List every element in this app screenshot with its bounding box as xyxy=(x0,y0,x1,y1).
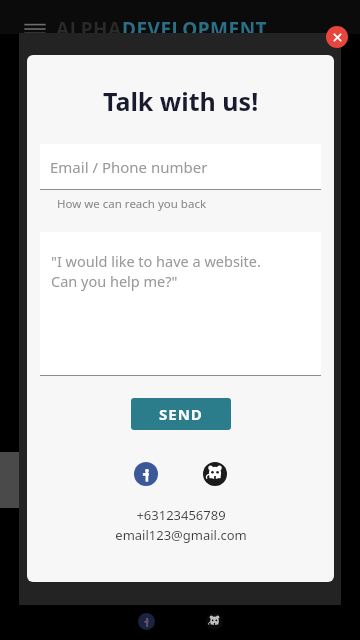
button[interactable]: GitHub xyxy=(198,457,232,491)
button[interactable]: Close xyxy=(326,26,348,48)
button[interactable] xyxy=(19,33,341,605)
button[interactable]: SEND xyxy=(131,398,231,430)
staticText: Email / Phone number xyxy=(50,157,208,177)
button[interactable]: Email / Phone number xyxy=(40,144,321,212)
button[interactable]: Facebook xyxy=(129,457,163,491)
button[interactable]: Menu xyxy=(22,19,48,39)
staticText: "I would like to have a website. Can you… xyxy=(51,251,261,292)
staticText: DEVELOPMENT xyxy=(122,16,268,42)
staticText: Talk with us! xyxy=(103,84,259,118)
staticText: ALPHA xyxy=(56,16,122,42)
staticText: +63123456789 xyxy=(136,506,226,524)
staticText: How we can reach you back xyxy=(57,196,207,212)
staticText: email123@gmail.com xyxy=(115,526,247,544)
button[interactable]: "I would like to have a website. Can you… xyxy=(40,232,321,376)
staticText: SEND xyxy=(159,404,203,424)
